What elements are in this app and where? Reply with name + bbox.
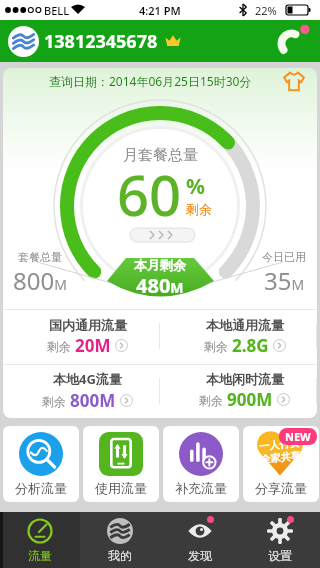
staticText: 800M [70,389,116,412]
staticText: 13812345678 [44,29,158,54]
staticText: 60 [117,156,182,232]
button[interactable]: 补充流量 [163,426,239,502]
button[interactable]: 分析流量 [3,426,79,502]
button[interactable]: 发现 [160,512,240,568]
staticText: 分析流量 [15,480,67,496]
button[interactable]: 查询日期：2014年06月25日15时30分 [3,68,317,94]
staticText: 本地通用流量 [206,317,284,333]
staticText: 480M [136,272,184,299]
staticText: 一人付费 [259,436,300,453]
staticText: 本地4G流量 [53,370,122,388]
staticText: 今日已用 [262,250,306,264]
staticText: NEW [285,429,311,444]
staticText: 本月剩余 [134,257,186,273]
staticText: % [186,172,205,201]
staticText: 35M [264,264,305,297]
staticText: 全家共享 [260,449,301,466]
staticText: 900M [227,388,273,411]
button[interactable]: 设置 [240,512,320,568]
button[interactable]: 本地闲时流量 [160,364,317,418]
staticText: 剩余 [204,338,232,354]
button[interactable] [276,24,310,58]
button[interactable]: 我的 [80,512,160,568]
staticText: BELL [44,3,70,18]
button[interactable]: 流量 [0,512,80,568]
staticText: 月套餐总量 [123,146,198,165]
staticText: 补充流量 [175,480,227,496]
staticText: 剩余 [42,393,70,409]
staticText: 800M [13,264,67,297]
staticText: 查询日期：2014年06月25日15时30分 [49,73,252,89]
button[interactable]: 国内通用流量 [3,309,160,364]
staticText: 套餐总量 [18,250,62,264]
button[interactable]: 一人付费 [243,426,319,502]
staticText: 发现 [188,548,212,563]
staticText: 剩余 [47,338,75,354]
staticText: 4:21 PM [139,3,181,18]
staticText: 20M [75,334,111,357]
staticText: 剩余 [199,392,227,408]
staticText: 我的 [108,548,132,563]
staticText: 国内通用流量 [49,317,127,333]
staticText: 分享流量 [255,480,307,496]
staticText: 本地闲时流量 [206,371,284,387]
staticText: 流量 [28,548,52,563]
staticText: 22% [255,3,277,18]
staticText: 设置 [268,548,292,563]
staticText: 使用流量 [95,480,147,496]
staticText: 剩余 [186,201,212,217]
button[interactable]: 本地通用流量 [160,309,317,364]
button[interactable]: 本地4G流量 [3,364,160,418]
staticText: 2.8G [232,334,269,357]
button[interactable]: 使用流量 [83,426,159,502]
